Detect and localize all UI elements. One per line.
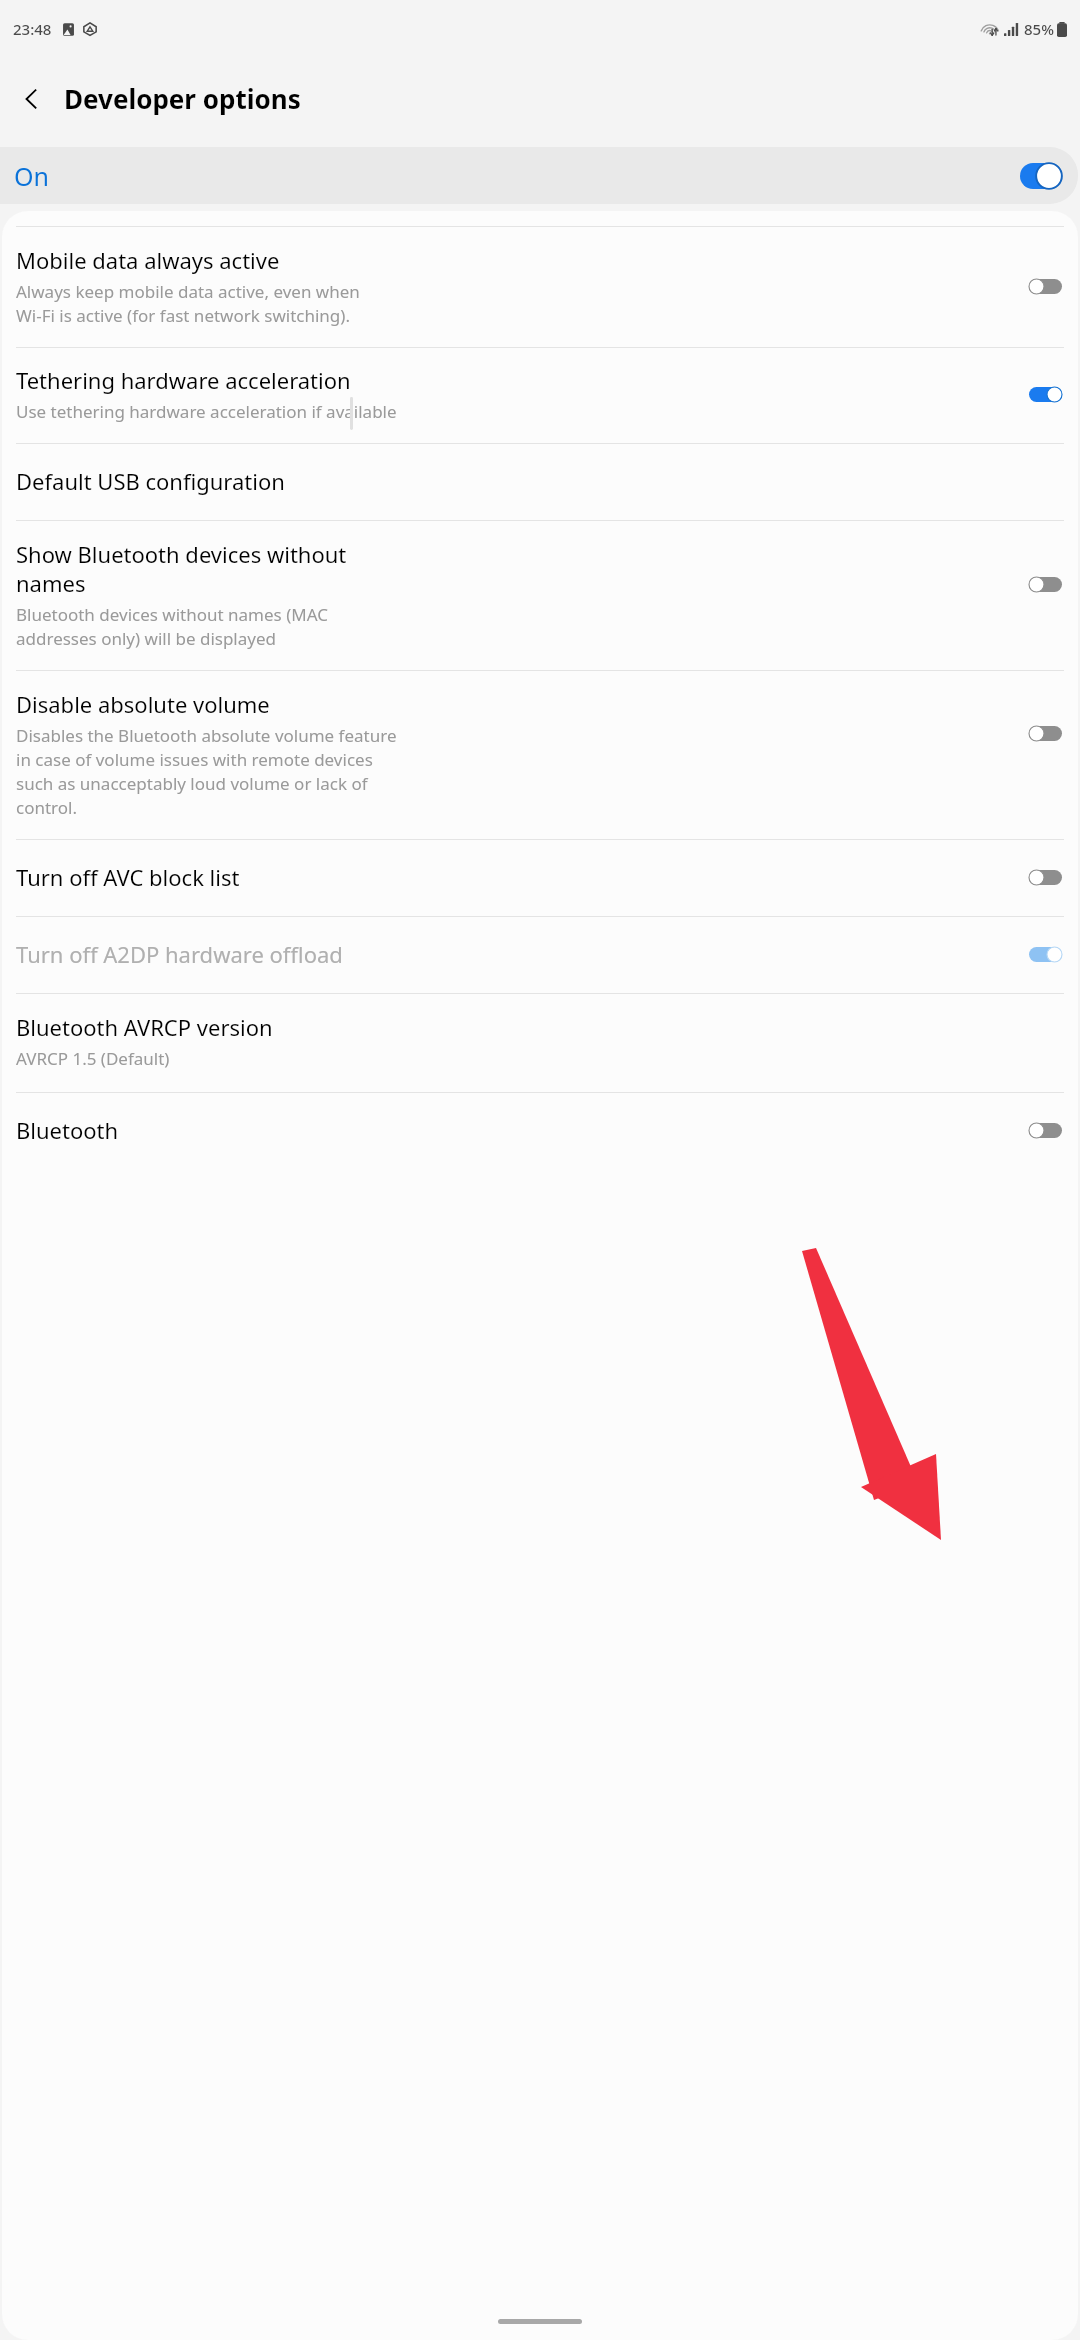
button[interactable]: Tethering hardware acceleration	[1029, 387, 1062, 402]
staticText: Disable absolute volume	[16, 689, 270, 719]
button[interactable]: Back	[8, 75, 56, 123]
button[interactable]: Turn off AVC block list	[1029, 870, 1062, 885]
staticText: Disables the Bluetooth absolute volume f…	[16, 724, 397, 819]
button[interactable]: Bluetooth AVRCP version	[2, 994, 1078, 1092]
staticText: Developer options	[64, 81, 301, 116]
button[interactable]: Mobile data always active	[2, 227, 1078, 347]
button[interactable]: Show Bluetooth devices without names	[2, 521, 1078, 670]
staticText: Bluetooth	[16, 1115, 119, 1145]
staticText: Show Bluetooth devices without names	[16, 539, 347, 598]
button[interactable]: Turn off A2DP hardware offload	[1029, 947, 1062, 962]
staticText: Turn off AVC block list	[16, 862, 240, 892]
button[interactable]: Disable absolute volume	[1029, 726, 1062, 741]
staticText: Tethering hardware acceleration	[16, 365, 351, 395]
button[interactable]: Mobile data always active	[1029, 279, 1062, 294]
button[interactable]: Bluetooth	[2, 1093, 1078, 1169]
button[interactable]: Tethering hardware acceleration	[2, 348, 1078, 443]
button[interactable]: Show Bluetooth devices without names	[1029, 577, 1062, 592]
staticText: Bluetooth devices without names (MAC add…	[16, 603, 328, 650]
button[interactable]: Turn off AVC block list	[2, 840, 1078, 916]
button[interactable]: Default USB configuration	[2, 444, 1078, 520]
staticText: 23:48	[13, 19, 52, 39]
button[interactable]: On	[0, 147, 1078, 204]
staticText: Mobile data always active	[16, 245, 280, 275]
staticText: On	[14, 159, 49, 193]
staticText: AVRCP 1.5 (Default)	[16, 1047, 170, 1070]
staticText: Always keep mobile data active, even whe…	[16, 280, 360, 327]
button[interactable]: Bluetooth	[1029, 1123, 1062, 1138]
staticText: Bluetooth AVRCP version	[16, 1012, 273, 1042]
staticText: Default USB configuration	[16, 466, 285, 496]
staticText: Turn off A2DP hardware offload	[16, 939, 343, 969]
button[interactable]: Disable absolute volume	[2, 671, 1078, 839]
staticText: Use tethering hardware acceleration if a…	[16, 400, 397, 423]
staticText: 85%	[1024, 19, 1054, 39]
button[interactable]: Turn off A2DP hardware offload	[2, 917, 1078, 993]
